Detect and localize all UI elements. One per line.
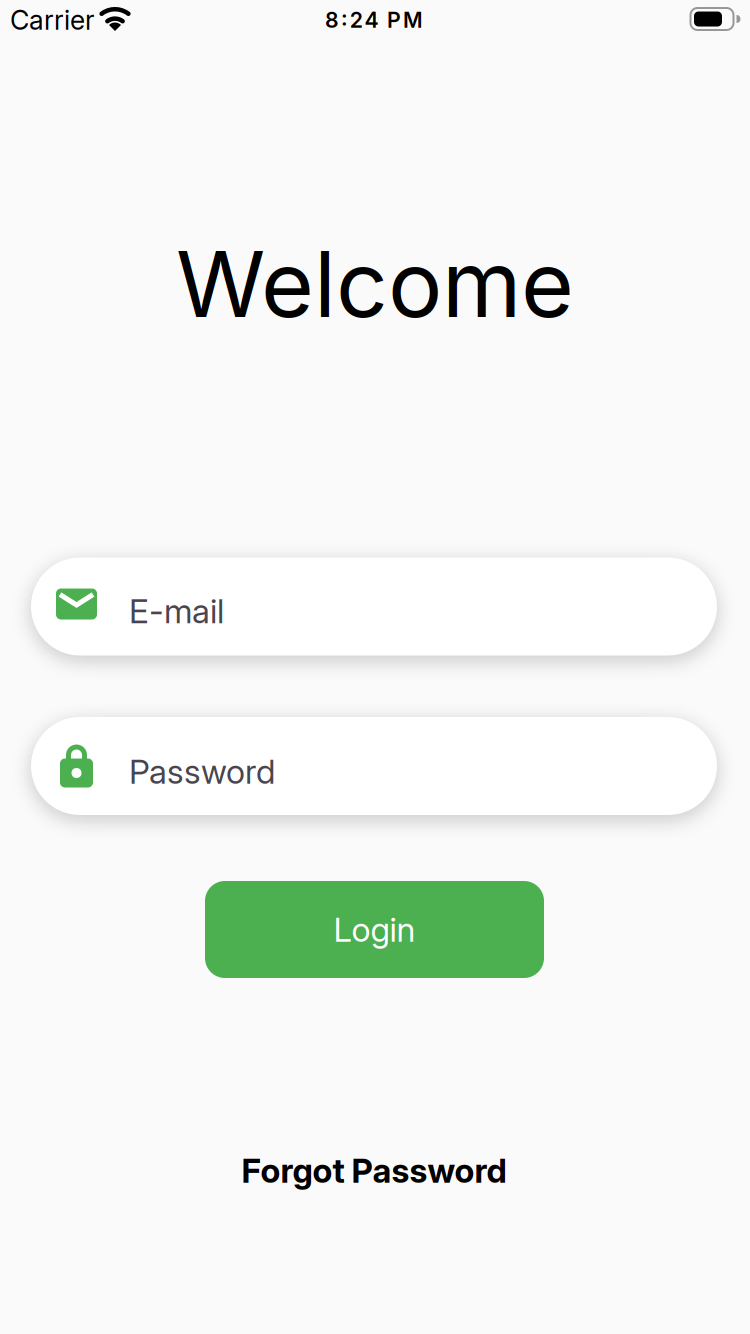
- button[interactable]: Forgot Password: [241, 1151, 506, 1190]
- staticText: Login: [333, 910, 415, 949]
- staticText: Password: [129, 752, 275, 791]
- button[interactable]: Login: [205, 881, 544, 978]
- staticText: Carrier: [10, 4, 95, 36]
- staticText: 8:24 PM: [325, 7, 423, 33]
- staticText: Forgot Password: [241, 1151, 506, 1190]
- staticText: Welcome: [176, 230, 574, 337]
- button[interactable]: E-mail: [31, 557, 717, 655]
- button[interactable]: Password: [31, 717, 717, 815]
- staticText: E-mail: [129, 591, 224, 631]
